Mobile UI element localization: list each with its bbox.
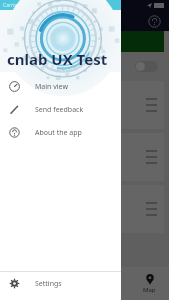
button[interactable] xyxy=(5,185,164,233)
staticText: About the app xyxy=(35,128,82,138)
staticText: Send feedback xyxy=(35,105,84,115)
button[interactable]: Map xyxy=(143,273,156,294)
button[interactable]: About the app xyxy=(0,121,121,144)
staticText: 2:28 PM xyxy=(51,2,70,9)
button[interactable]: Settings xyxy=(0,272,121,295)
staticText: cnlab UX Test xyxy=(7,49,108,69)
button[interactable]: Main view xyxy=(0,75,121,98)
button[interactable]: Send feedback xyxy=(0,98,121,121)
button[interactable]: Help xyxy=(148,15,161,28)
button[interactable]: Toggle xyxy=(135,61,158,72)
button[interactable] xyxy=(5,133,164,181)
staticText: Settings xyxy=(35,279,62,289)
staticText: Main view xyxy=(35,82,68,92)
button[interactable] xyxy=(5,81,164,129)
staticText: Map xyxy=(143,286,156,294)
staticText: Carrier xyxy=(3,2,20,9)
